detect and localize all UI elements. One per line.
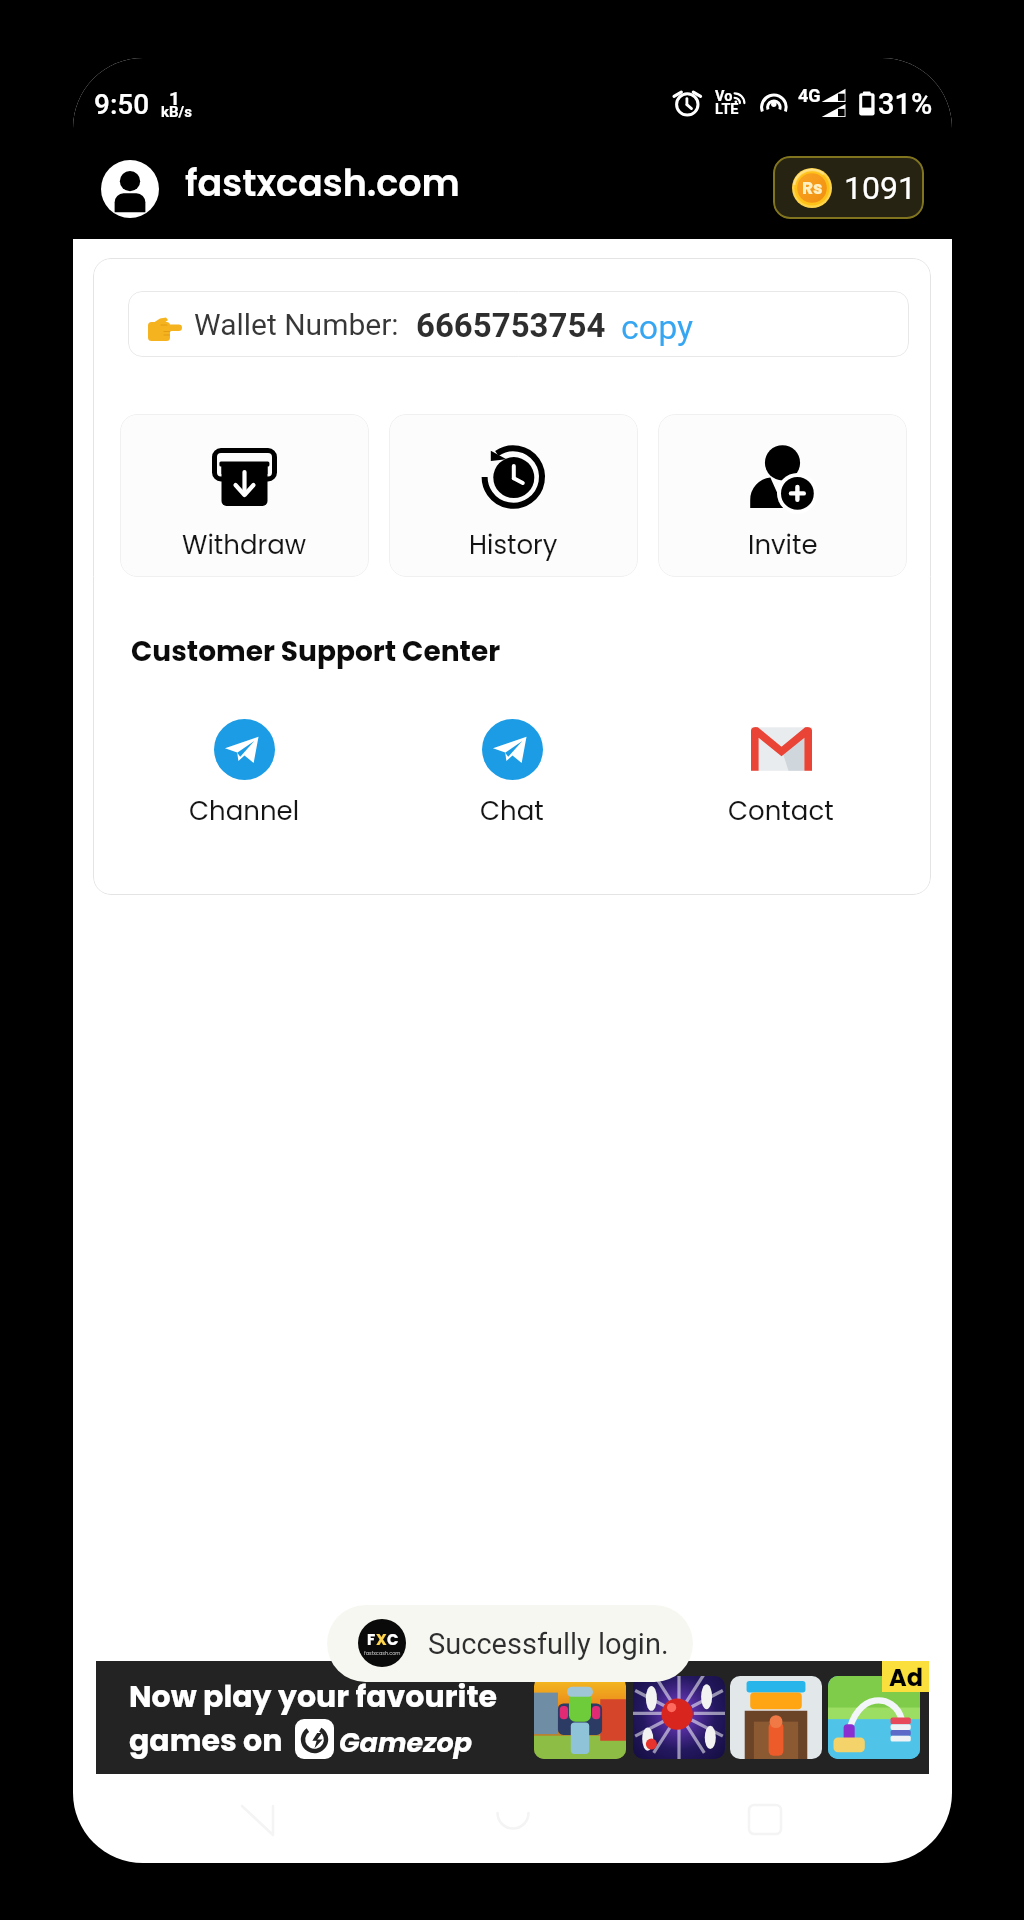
button[interactable]: Rs [773,156,924,219]
button[interactable]: History [389,414,638,577]
button[interactable]: Channel [154,719,334,835]
staticText: 1 [169,87,180,109]
staticText: F [367,1629,376,1650]
button[interactable]: Game ad [534,1676,626,1759]
button[interactable]: Withdraw [120,414,369,577]
button[interactable]: Chat [422,719,602,835]
staticText: Ad [889,1661,923,1692]
staticText: games on [129,1720,283,1762]
staticText: 9:50 [94,88,150,121]
button[interactable]: Back [238,1802,278,1842]
staticText: fastxcash.com [185,158,460,209]
staticText: 6665753754 [416,306,606,345]
staticText: Contact [728,793,834,829]
staticText: Vo [715,88,733,105]
button[interactable]: Recent apps [747,1803,783,1839]
staticText: Customer Support Center [131,632,501,671]
staticText: Gamezop [339,1724,473,1762]
staticText: Now play your favourite [129,1676,498,1718]
button[interactable]: Game ad [828,1676,920,1759]
button[interactable]: Profile [101,160,159,218]
staticText: History [469,527,558,563]
staticText: Wallet Number: [194,307,399,342]
staticText: Chat [480,793,544,829]
button[interactable]: Game ad [633,1676,725,1759]
staticText: LTE [715,101,739,118]
staticText: 31% [878,87,933,121]
staticText: C [387,1629,399,1650]
staticText: 4G [798,85,821,106]
staticText: Withdraw [182,527,307,563]
button[interactable]: Game ad [730,1676,822,1759]
staticText: Channel [189,793,300,829]
staticText: 1091 [844,169,916,207]
button[interactable]: copy [621,307,694,347]
button[interactable]: Gamezop [295,1719,334,1759]
button[interactable]: Home [496,1796,530,1830]
staticText: Rs [802,176,823,200]
staticText: kB/s [161,103,192,121]
staticText: Invite [748,527,818,563]
staticText: Successfully login. [428,1627,669,1661]
button[interactable]: Contact [691,719,871,835]
staticText: copy [621,307,694,347]
button[interactable]: Invite [658,414,907,577]
staticText: fastxcash.com [364,1650,401,1657]
staticText: X [376,1629,387,1650]
